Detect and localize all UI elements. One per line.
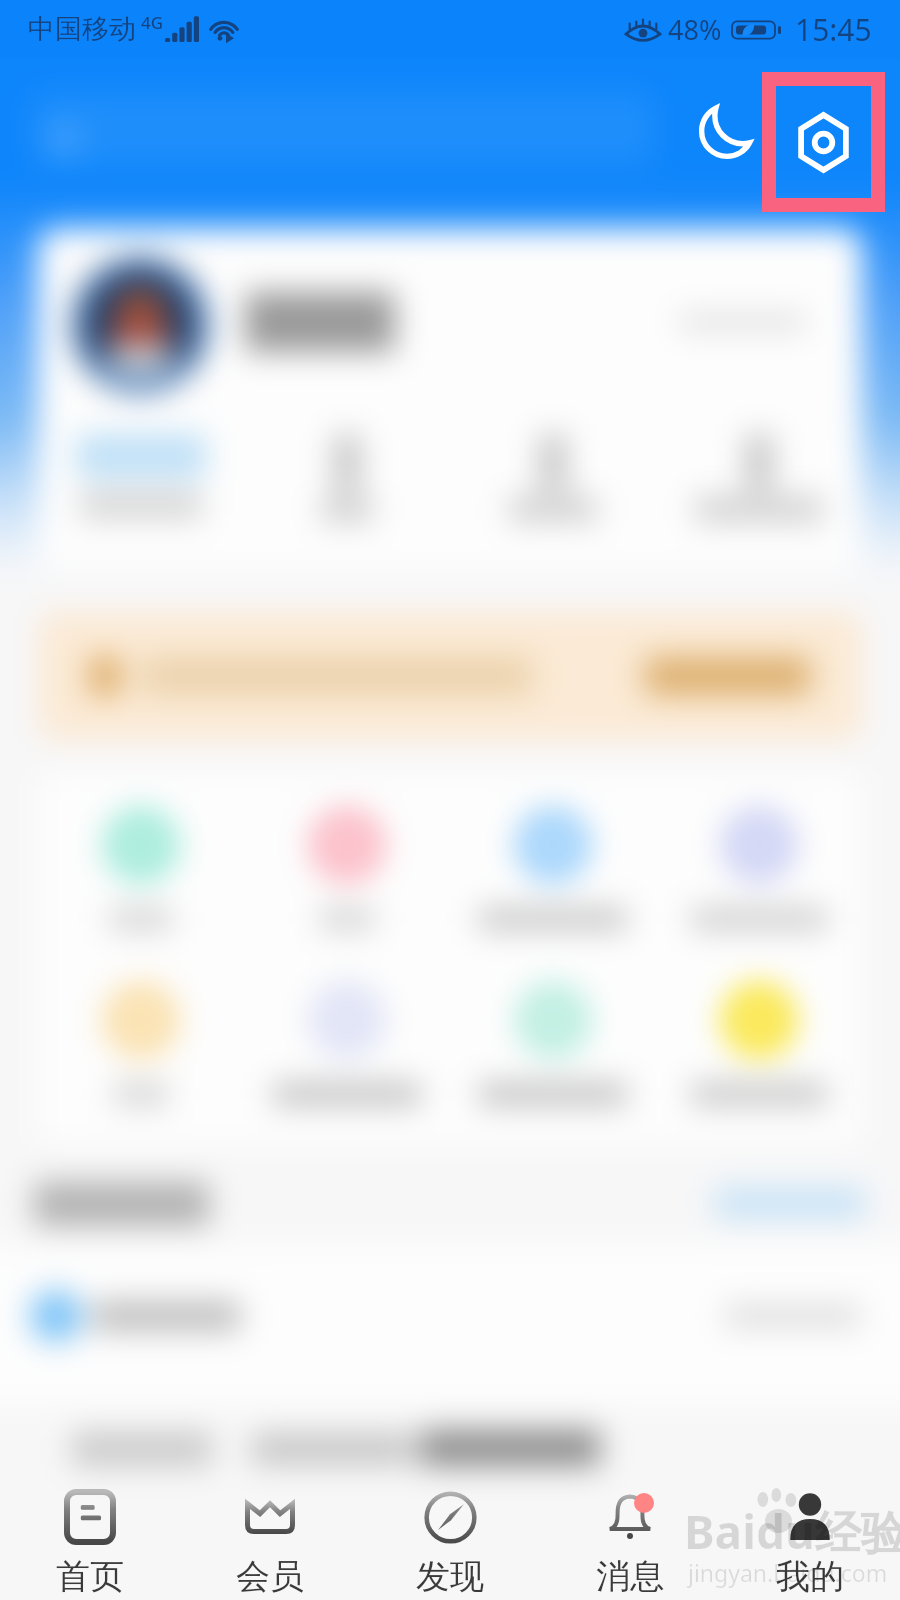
button[interactable] — [30, 92, 655, 166]
button[interactable] — [656, 434, 862, 522]
button[interactable] — [450, 808, 656, 930]
button[interactable] — [244, 983, 450, 1105]
button[interactable] — [656, 983, 862, 1105]
button[interactable]: 首页 — [0, 1470, 180, 1598]
button[interactable] — [38, 983, 244, 1105]
button[interactable]: 我的 — [720, 1470, 900, 1598]
button[interactable] — [656, 808, 862, 930]
button[interactable] — [38, 612, 862, 740]
button[interactable] — [450, 983, 656, 1105]
button[interactable]: Night mode — [687, 91, 767, 171]
staticText: Baidu经验 — [684, 1500, 900, 1563]
staticText: 中国移动 — [28, 12, 136, 46]
staticText: 48% — [668, 11, 722, 48]
button[interactable] — [38, 228, 862, 572]
button[interactable]: 会员 — [180, 1470, 360, 1598]
staticText: 发现 — [416, 1555, 484, 1598]
button[interactable] — [450, 434, 656, 522]
staticText: 首页 — [56, 1555, 124, 1598]
button[interactable] — [38, 808, 244, 930]
staticText: 消息 — [596, 1555, 664, 1598]
button[interactable]: 发现 — [360, 1470, 540, 1598]
staticText: 会员 — [236, 1555, 304, 1598]
button[interactable] — [244, 434, 450, 522]
button[interactable]: 消息 — [540, 1470, 720, 1598]
button[interactable] — [244, 808, 450, 930]
button[interactable] — [38, 434, 244, 518]
staticText: 我的 — [776, 1555, 844, 1598]
button[interactable]: Settings — [762, 72, 885, 212]
staticText: 15:45 — [795, 9, 872, 50]
button[interactable] — [0, 1245, 900, 1405]
staticText: 4G — [141, 11, 164, 34]
staticText: jingyan.baidu.com — [688, 1557, 888, 1588]
